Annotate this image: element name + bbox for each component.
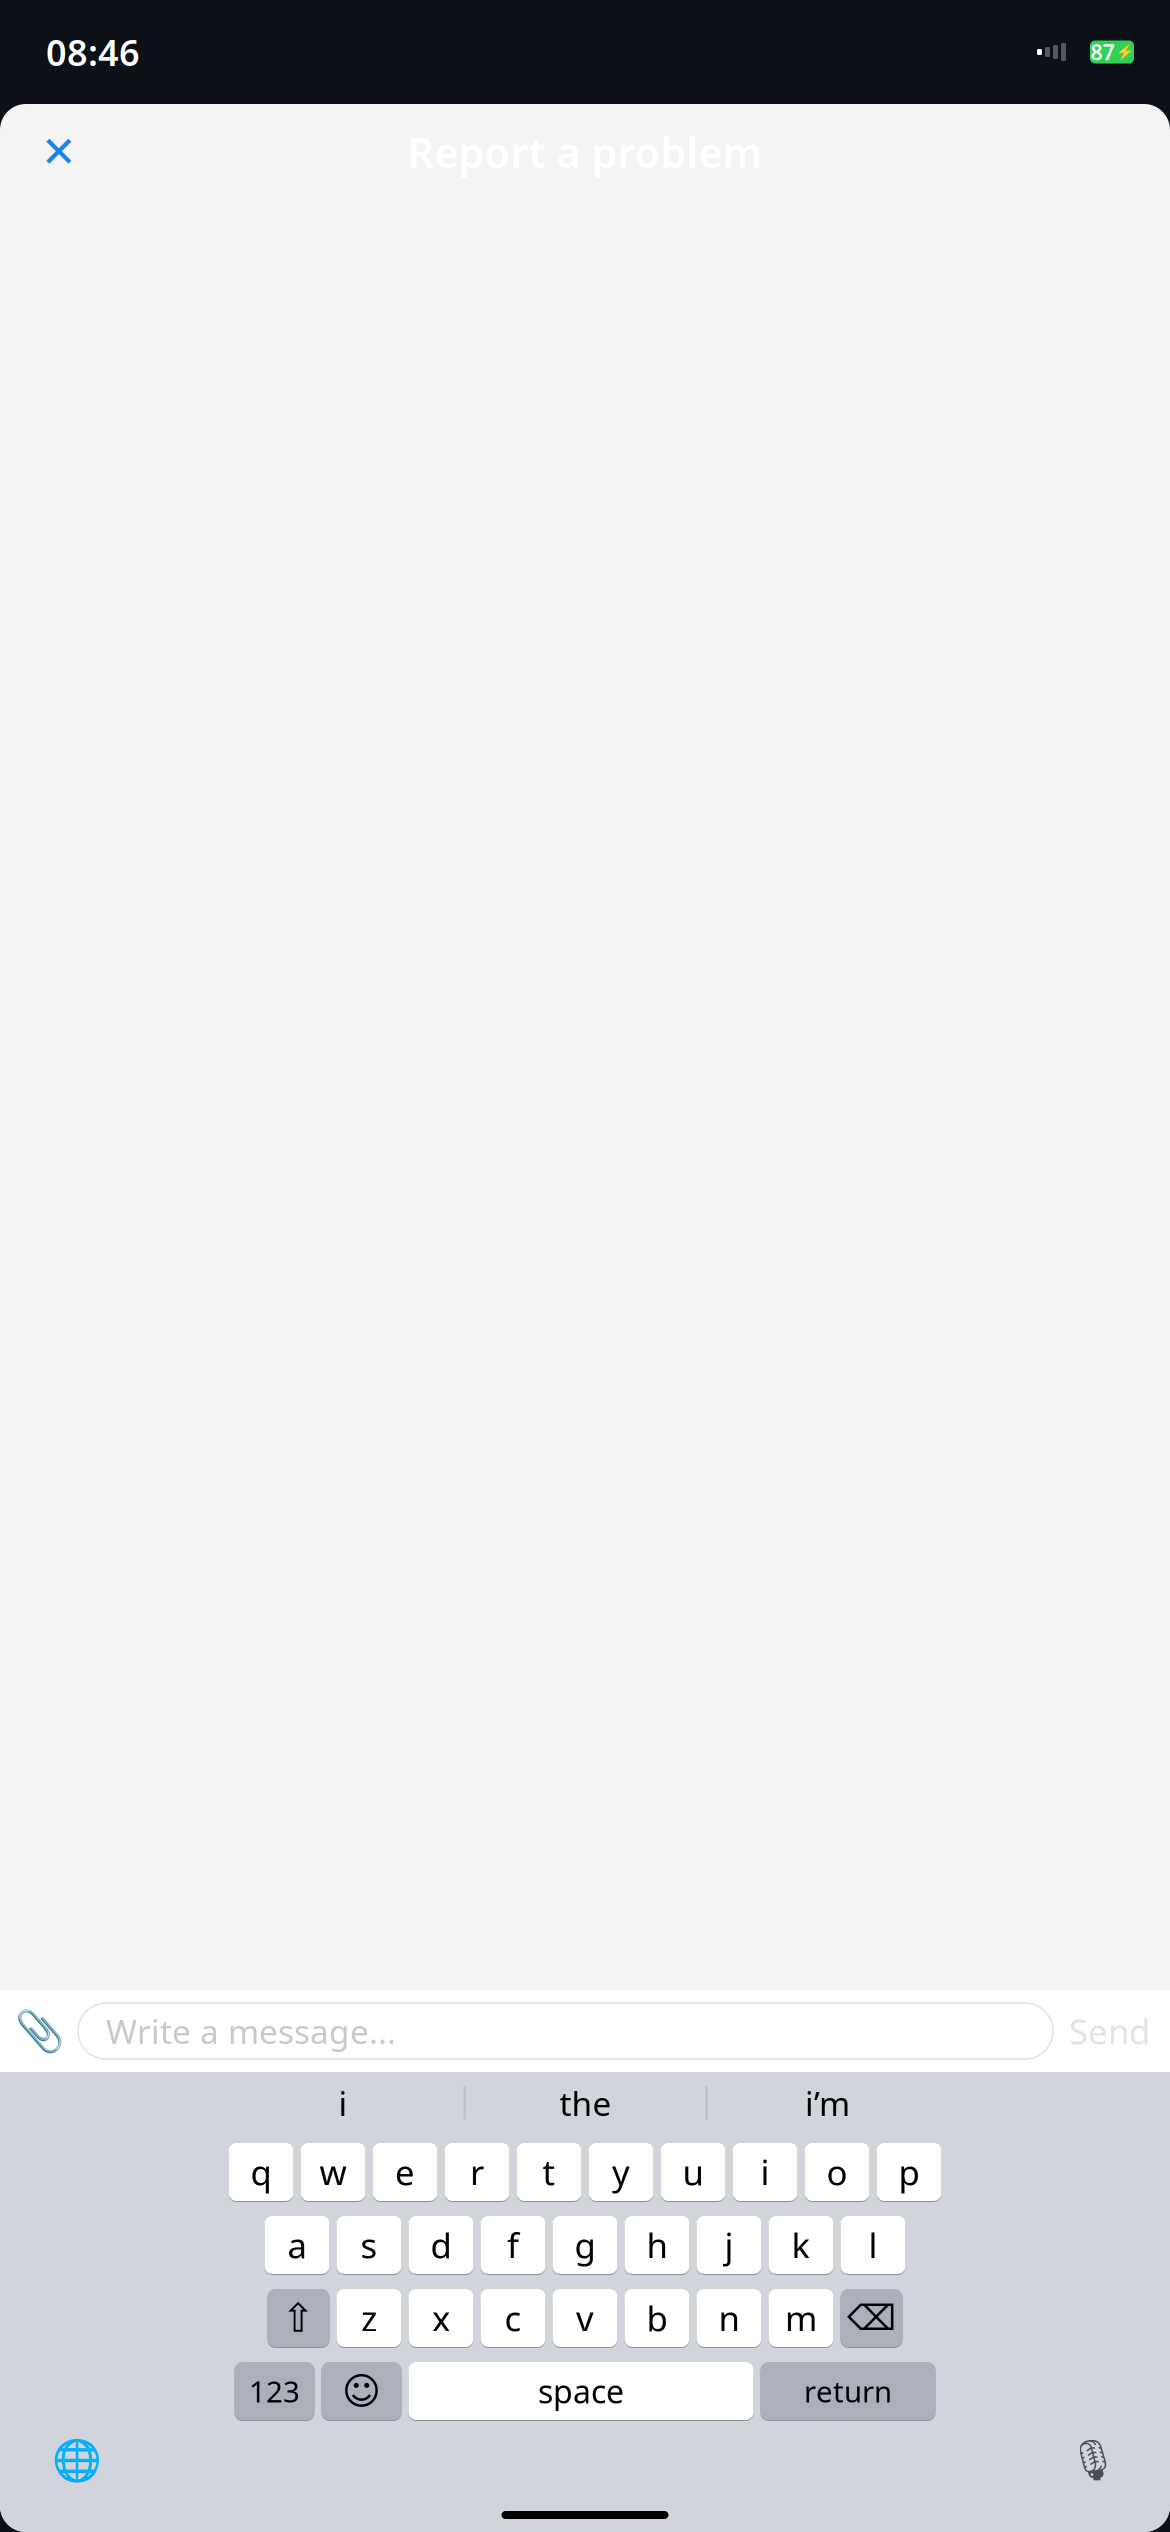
staticText: z (361, 2295, 377, 2341)
button[interactable]: r (444, 2142, 509, 2202)
staticText: Report a problem (407, 125, 762, 179)
button[interactable]: Write a message... (78, 2003, 1053, 2059)
staticText: h (646, 2222, 667, 2268)
staticText: m (785, 2295, 817, 2341)
staticText: r (470, 2149, 484, 2195)
button[interactable]: Attach file (12, 2003, 68, 2059)
button[interactable]: Shift (267, 2288, 329, 2348)
button[interactable]: 123 (234, 2361, 314, 2421)
button[interactable]: d (408, 2215, 473, 2275)
staticText: ☺ (342, 2370, 381, 2412)
button[interactable]: i (732, 2142, 797, 2202)
button[interactable]: a (264, 2215, 329, 2275)
staticText: y (612, 2149, 630, 2195)
staticText: 123 (249, 2371, 300, 2410)
button[interactable]: z (336, 2288, 401, 2348)
staticText: j (724, 2222, 733, 2268)
button[interactable]: ☺ (321, 2361, 401, 2421)
button[interactable]: n (696, 2288, 761, 2348)
button[interactable]: space (408, 2361, 753, 2421)
staticText: w (319, 2149, 346, 2195)
button[interactable]: v (552, 2288, 617, 2348)
button[interactable]: the (465, 2079, 705, 2127)
button[interactable]: f (480, 2215, 545, 2275)
staticText: return (804, 2371, 892, 2410)
staticText: ⇧ (281, 2295, 315, 2341)
staticText: x (432, 2295, 450, 2341)
staticText: s (360, 2222, 377, 2268)
staticText: the (559, 2081, 611, 2125)
button[interactable]: q (228, 2142, 293, 2202)
staticText: 87 (1090, 38, 1114, 66)
staticText: u (682, 2149, 703, 2195)
staticText: ✕ (41, 128, 77, 176)
staticText: f (507, 2222, 519, 2268)
button[interactable]: b (624, 2288, 689, 2348)
button[interactable]: g (552, 2215, 617, 2275)
button[interactable]: w (300, 2142, 365, 2202)
staticText: 📎 (15, 2008, 65, 2054)
staticText: Send (1069, 2008, 1150, 2054)
button[interactable]: c (480, 2288, 545, 2348)
button[interactable]: Send (1053, 2003, 1166, 2059)
staticText: ⌫ (847, 2298, 896, 2338)
button[interactable]: s (336, 2215, 401, 2275)
button[interactable]: p (876, 2142, 941, 2202)
button[interactable]: Next keyboard (42, 2431, 112, 2489)
staticText: n (718, 2295, 739, 2341)
staticText: e (395, 2149, 415, 2195)
button[interactable]: Close (28, 121, 90, 183)
button[interactable]: m (768, 2288, 833, 2348)
staticText: c (504, 2295, 521, 2341)
button[interactable]: i’m (707, 2079, 947, 2127)
button[interactable]: y (588, 2142, 653, 2202)
staticText: t (542, 2149, 555, 2195)
staticText: 🎙 (1067, 2437, 1118, 2483)
staticText: Write a message... (106, 2009, 396, 2053)
staticText: g (574, 2222, 595, 2268)
staticText: i (338, 2081, 347, 2125)
button[interactable]: return (760, 2361, 935, 2421)
staticText: a (287, 2222, 306, 2268)
button[interactable]: x (408, 2288, 473, 2348)
staticText: i (760, 2149, 769, 2195)
staticText: 🌐 (52, 2437, 102, 2483)
staticText: k (791, 2222, 810, 2268)
button[interactable]: k (768, 2215, 833, 2275)
staticText: d (430, 2222, 451, 2268)
staticText: l (868, 2222, 877, 2268)
button[interactable]: j (696, 2215, 761, 2275)
staticText: p (898, 2149, 919, 2195)
button[interactable]: e (372, 2142, 437, 2202)
staticText: ⚡ (1115, 44, 1133, 60)
button[interactable]: i (222, 2079, 463, 2127)
button[interactable]: Dictate (1058, 2431, 1128, 2489)
button[interactable]: Delete (840, 2288, 902, 2348)
button[interactable]: h (624, 2215, 689, 2275)
button[interactable]: u (660, 2142, 725, 2202)
staticText: q (250, 2149, 271, 2195)
button[interactable]: o (804, 2142, 869, 2202)
staticText: v (576, 2295, 594, 2341)
button[interactable]: t (516, 2142, 581, 2202)
staticText: space (538, 2370, 624, 2412)
staticText: 08:46 (46, 28, 140, 76)
button[interactable]: l (840, 2215, 905, 2275)
staticText: o (826, 2149, 847, 2195)
staticText: b (646, 2295, 667, 2341)
staticText: i’m (805, 2081, 850, 2125)
